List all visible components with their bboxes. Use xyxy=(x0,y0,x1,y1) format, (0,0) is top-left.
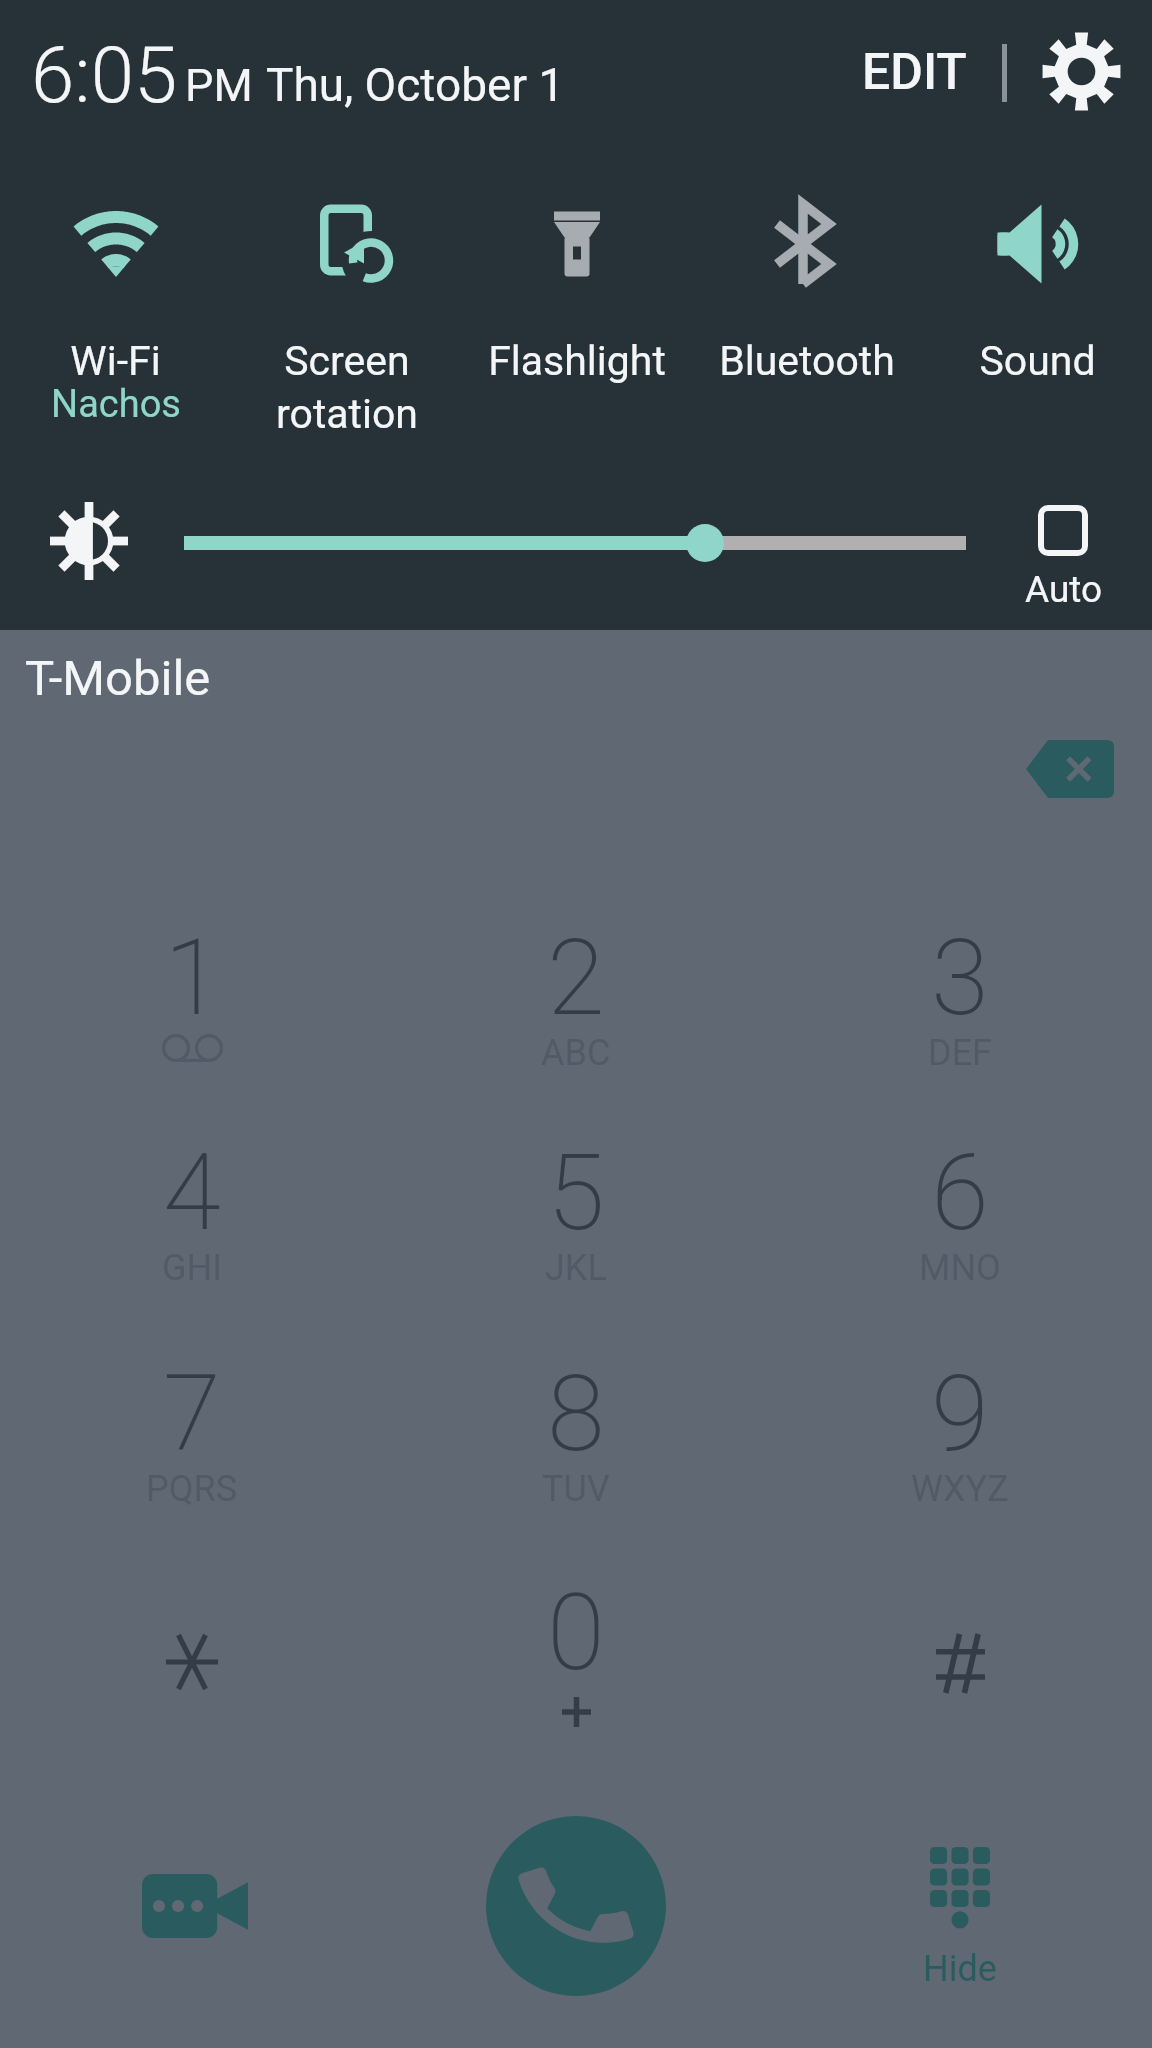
staticText: Auto xyxy=(1025,568,1103,611)
staticText: 3 xyxy=(931,917,989,1040)
staticText: 6:05 xyxy=(31,30,178,121)
staticText: 5 xyxy=(547,1132,605,1255)
staticText: WXYZ xyxy=(911,1468,1009,1510)
button[interactable]: Backspace xyxy=(1026,740,1114,798)
button[interactable]: Video call xyxy=(142,1874,248,1938)
button[interactable]: 3 xyxy=(768,880,1152,1098)
staticText: Thu, October 1 xyxy=(266,58,565,112)
staticText: 2 xyxy=(547,917,605,1040)
staticText: 8 xyxy=(547,1353,605,1476)
button[interactable]: Auto xyxy=(1013,496,1113,611)
button[interactable]: Wi-Fi xyxy=(0,170,231,470)
button[interactable]: Settings xyxy=(1044,32,1119,111)
button[interactable]: 6 xyxy=(768,1095,1152,1313)
staticText: Bluetooth xyxy=(719,337,895,385)
button[interactable]: 2 xyxy=(384,880,768,1098)
staticText: Nachos xyxy=(51,382,181,427)
button[interactable]: Call xyxy=(486,1816,666,1996)
button[interactable] xyxy=(768,1535,1152,1753)
staticText: Screen rotation xyxy=(276,337,418,438)
button[interactable]: 0 xyxy=(384,1535,768,1753)
staticText: 1 xyxy=(164,917,222,1040)
staticText: PQRS xyxy=(146,1468,238,1510)
button[interactable]: 4 xyxy=(0,1095,384,1313)
button[interactable]: Bluetooth xyxy=(692,170,922,470)
button[interactable]: 8 xyxy=(384,1316,768,1534)
staticText: Hide xyxy=(923,1948,997,1990)
button[interactable]: 9 xyxy=(768,1316,1152,1534)
button[interactable]: Screen rotation xyxy=(231,170,462,470)
button[interactable]: 5 xyxy=(384,1095,768,1313)
button[interactable]: Hide xyxy=(900,1838,1020,1990)
staticText: 6 xyxy=(931,1132,989,1255)
staticText: 4 xyxy=(163,1132,221,1255)
staticText: T-Mobile xyxy=(25,650,211,707)
button[interactable]: EDIT xyxy=(846,26,982,118)
staticText: MNO xyxy=(919,1247,1001,1289)
staticText: Flashlight xyxy=(488,337,666,385)
button[interactable]: 7 xyxy=(0,1316,384,1534)
staticText: 9 xyxy=(931,1353,989,1476)
staticText: Sound xyxy=(979,337,1096,385)
staticText: DEF xyxy=(928,1032,992,1074)
staticText: 0 xyxy=(547,1572,605,1695)
staticText: 7 xyxy=(163,1353,221,1476)
staticText: ABC xyxy=(541,1032,611,1074)
staticText: GHI xyxy=(162,1247,222,1289)
staticText: Wi-Fi xyxy=(70,337,161,385)
button[interactable]: Flashlight xyxy=(462,170,692,470)
staticText: TUV xyxy=(542,1468,610,1510)
button[interactable] xyxy=(0,1535,384,1753)
button[interactable]: 1 xyxy=(0,880,384,1098)
button[interactable]: Sound xyxy=(922,170,1152,470)
staticText: EDIT xyxy=(862,43,967,102)
staticText: PM xyxy=(185,59,253,112)
staticText: JKL xyxy=(545,1247,607,1289)
